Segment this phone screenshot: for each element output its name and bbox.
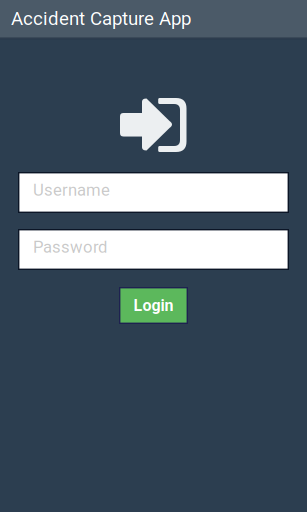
button[interactable]: Username — [18, 172, 289, 213]
button[interactable]: Password — [18, 229, 289, 270]
staticText: Password — [33, 237, 107, 257]
button[interactable]: Login — [119, 287, 188, 324]
staticText: Username — [33, 180, 110, 200]
staticText: Accident Capture App — [11, 8, 191, 29]
staticText: Login — [133, 296, 173, 315]
